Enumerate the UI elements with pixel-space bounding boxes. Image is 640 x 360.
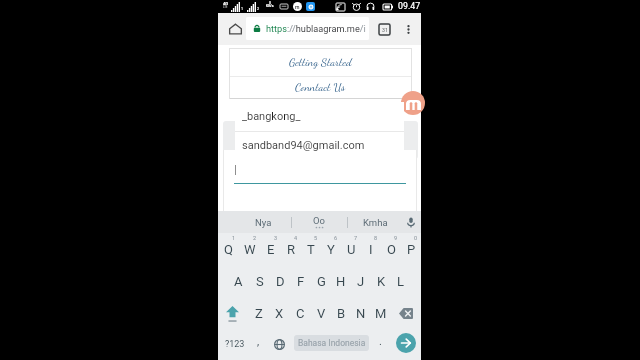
button[interactable]: N — [351, 297, 371, 329]
staticText: , — [257, 335, 260, 348]
staticText: F — [297, 274, 305, 289]
button[interactable]: sandband94@gmail.com — [235, 132, 404, 159]
button[interactable]: P — [401, 233, 421, 265]
button[interactable]: Conntact Us — [229, 77, 412, 98]
staticText: Kmha — [363, 217, 388, 228]
staticText: Y — [327, 242, 335, 257]
button[interactable]: L — [391, 265, 411, 297]
staticText: 0 — [269, 1, 271, 5]
button[interactable]: ?123 — [218, 329, 251, 360]
button[interactable]: K — [371, 265, 391, 297]
button[interactable]: Bahasa Indonesia — [294, 335, 369, 351]
staticText: P — [407, 242, 416, 257]
staticText: V — [317, 306, 326, 321]
button[interactable]: I — [361, 233, 381, 265]
button[interactable]: _bangkong_ — [235, 102, 404, 131]
button[interactable]: E — [260, 233, 281, 265]
staticText: . — [379, 335, 382, 348]
staticText: I — [369, 242, 373, 257]
button[interactable]: A — [228, 265, 249, 297]
staticText: O — [387, 242, 396, 257]
button[interactable]: Q — [218, 233, 239, 265]
button[interactable]: Tabs — [375, 13, 393, 45]
button[interactable]: Kmha — [347, 211, 403, 233]
button[interactable]: S — [249, 265, 270, 297]
button[interactable]: Send — [396, 333, 416, 353]
staticText: R — [287, 242, 296, 257]
button[interactable]: , — [249, 329, 268, 360]
button[interactable]: R — [281, 233, 301, 265]
staticText: Bahasa Indonesia — [298, 338, 366, 348]
button[interactable]: X — [269, 297, 290, 329]
button[interactable]: Getting Started — [229, 49, 412, 76]
staticText: C — [296, 306, 305, 321]
button[interactable]: C — [290, 297, 311, 329]
staticText: D — [276, 274, 285, 289]
button[interactable]: W — [239, 233, 260, 265]
staticText: https://hublaagram.me/i — [266, 23, 366, 34]
staticText: Z — [255, 306, 263, 321]
staticText: 2 — [257, 7, 260, 11]
staticText: E — [267, 242, 275, 257]
button[interactable]: More options — [400, 13, 416, 45]
button[interactable]: G — [311, 265, 331, 297]
staticText: 31 — [382, 27, 388, 33]
staticText: 9 — [394, 235, 398, 241]
staticText: B — [337, 306, 346, 321]
staticText: ?123 — [225, 339, 245, 350]
button[interactable]: J — [351, 265, 371, 297]
staticText: W — [244, 242, 256, 257]
staticText: 4 — [294, 235, 298, 241]
staticText: N — [356, 306, 366, 321]
staticText: 7 — [354, 235, 358, 241]
button[interactable]: Y — [321, 233, 341, 265]
staticText: 3 — [274, 235, 278, 241]
staticText: _bangkong_ — [242, 110, 301, 123]
staticText: 2 — [253, 235, 257, 241]
button[interactable]: F — [291, 265, 311, 297]
button[interactable]: T — [301, 233, 321, 265]
staticText: 0 — [414, 235, 418, 241]
button[interactable]: Home — [225, 13, 246, 45]
staticText: KB/s — [266, 4, 274, 8]
button[interactable]: U — [341, 233, 361, 265]
button[interactable]: Oo — [291, 211, 347, 233]
button[interactable]: Voice input — [400, 211, 421, 233]
button[interactable]: https://hublaagram.me/i — [246, 17, 369, 40]
button[interactable]: V — [311, 297, 331, 329]
button[interactable]: Chat widget — [401, 91, 425, 115]
button[interactable]: D — [270, 265, 291, 297]
staticText: X — [275, 306, 284, 321]
button[interactable]: Change language — [269, 329, 289, 360]
staticText: 5 — [314, 235, 318, 241]
staticText: 09.47 — [398, 1, 421, 11]
staticText: U — [347, 242, 356, 257]
staticText: L — [397, 274, 405, 289]
staticText: Conntact Us — [295, 81, 346, 95]
staticText: 6 — [334, 235, 338, 241]
button[interactable]: Nya — [235, 211, 291, 233]
button[interactable]: Backspace — [391, 297, 421, 329]
staticText: Oo — [313, 215, 325, 226]
staticText: LTE — [223, 5, 228, 8]
button[interactable]: M — [371, 297, 391, 329]
button[interactable]: H — [331, 265, 351, 297]
staticText: 1 — [232, 235, 236, 241]
staticText: Getting Started — [289, 56, 352, 70]
button[interactable]: O — [381, 233, 401, 265]
staticText: S — [256, 274, 264, 289]
staticText: G — [317, 274, 326, 289]
button[interactable]: B — [331, 297, 351, 329]
button[interactable]: Z — [248, 297, 269, 329]
button[interactable]: Shift — [218, 297, 248, 329]
staticText: M — [375, 306, 387, 321]
staticText: 1 — [241, 7, 244, 11]
staticText: sandband94@gmail.com — [242, 139, 365, 152]
staticText: Nya — [255, 217, 272, 228]
staticText: A — [234, 274, 243, 289]
staticText: T — [307, 242, 315, 257]
staticText: Q — [224, 242, 233, 257]
button[interactable]: . — [370, 329, 390, 360]
staticText: 8 — [374, 235, 378, 241]
staticText: K — [377, 274, 386, 289]
